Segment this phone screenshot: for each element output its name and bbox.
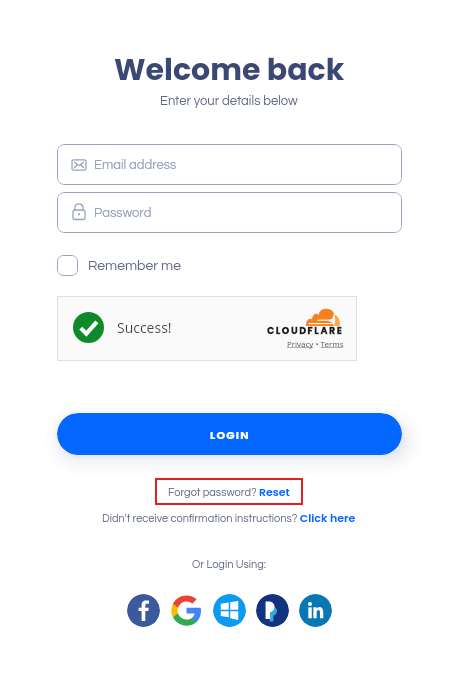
staticText: Privacy • Terms bbox=[287, 338, 344, 349]
button[interactable]: Sign in with Google bbox=[170, 594, 203, 627]
button[interactable]: Sign in with Facebook bbox=[127, 594, 160, 627]
staticText: CLOUDFLARE bbox=[267, 324, 344, 337]
button[interactable]: Didn't receive confirmation instructions… bbox=[102, 510, 356, 525]
button[interactable]: Password bbox=[57, 192, 402, 233]
staticText: LOGIN bbox=[210, 427, 250, 442]
button[interactable]: Sign in with Microsoft bbox=[213, 594, 246, 627]
button[interactable]: Forgot password? Reset bbox=[155, 478, 303, 505]
button[interactable]: Remember me bbox=[57, 255, 185, 276]
button[interactable]: Email address bbox=[57, 144, 402, 185]
staticText: Welcome back bbox=[114, 49, 345, 91]
button[interactable]: Sign in with LinkedIn bbox=[299, 594, 332, 627]
staticText: Remember me bbox=[88, 259, 181, 273]
staticText: Forgot password? Reset bbox=[168, 484, 290, 499]
staticText: Email address bbox=[94, 158, 177, 171]
button[interactable]: Sign in with PayPal bbox=[256, 594, 289, 627]
button[interactable]: LOGIN bbox=[57, 413, 402, 455]
staticText: Or Login Using: bbox=[192, 559, 267, 570]
staticText: Password bbox=[94, 206, 152, 219]
staticText: Success! bbox=[117, 318, 172, 337]
staticText: Enter your details below bbox=[160, 94, 298, 107]
